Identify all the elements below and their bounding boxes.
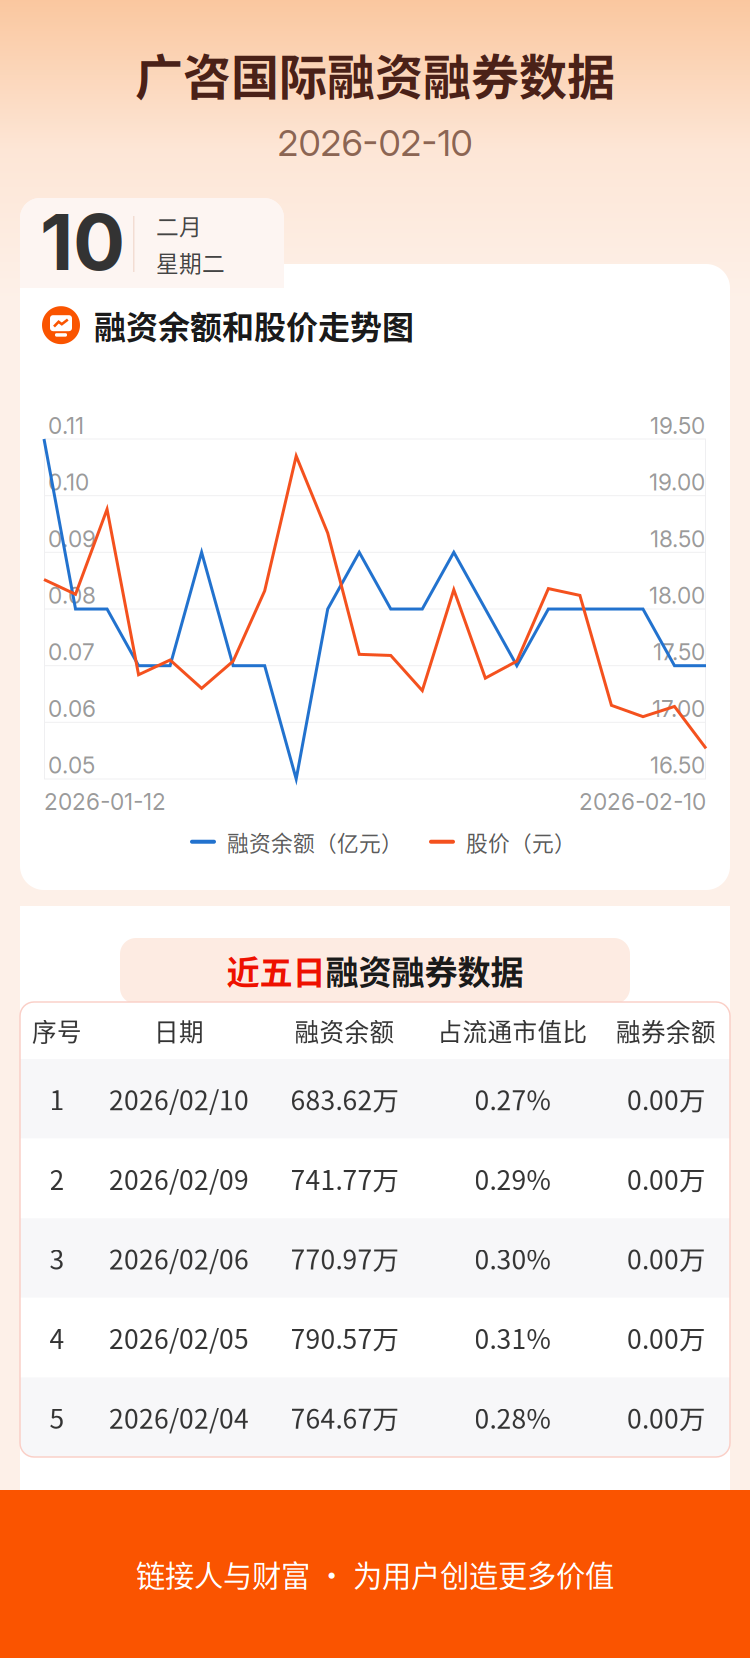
staticText: 占流通市值比: [437, 1013, 587, 1048]
staticText: 融资余额: [294, 1013, 394, 1048]
staticText: 0.00万: [627, 1159, 705, 1197]
staticText: 融资余额和股价走势图: [94, 302, 414, 348]
staticText: 2026-02-10: [277, 121, 472, 165]
staticText: 0.00万: [627, 1080, 705, 1118]
staticText: 近五日: [226, 946, 325, 994]
staticText: 融资余额（亿元）: [227, 826, 403, 857]
staticText: 18.00: [649, 582, 705, 609]
staticText: 0.00万: [627, 1239, 705, 1277]
staticText: 790.57万: [290, 1318, 398, 1357]
staticText: 0.29%: [474, 1159, 550, 1197]
staticText: 2026/02/05: [109, 1318, 249, 1357]
staticText: 770.97万: [290, 1239, 398, 1277]
staticText: 0.31%: [474, 1318, 550, 1357]
staticText: 18.50: [650, 525, 705, 553]
staticText: 19.00: [649, 469, 705, 496]
staticText: 0.28%: [474, 1398, 550, 1436]
staticText: 融券余额: [616, 1013, 716, 1048]
staticText: 3: [49, 1239, 64, 1277]
staticText: 4: [49, 1318, 64, 1357]
staticText: 序号: [32, 1013, 82, 1048]
staticText: 2: [49, 1159, 64, 1197]
staticText: 741.77万: [290, 1159, 398, 1197]
staticText: 2026-02-10: [579, 788, 706, 815]
staticText: 2026-01-12: [44, 788, 166, 815]
staticText: 17.50: [653, 638, 705, 666]
staticText: 683.62万: [290, 1080, 398, 1118]
staticText: 0.11: [48, 412, 84, 439]
staticText: 0.00万: [627, 1318, 705, 1357]
staticText: 0.09: [48, 525, 96, 553]
staticText: 0.06: [48, 695, 96, 722]
staticText: 星期二: [156, 246, 225, 279]
staticText: 2026/02/04: [109, 1398, 249, 1436]
staticText: 0.00万: [627, 1398, 705, 1436]
staticText: 2026/02/09: [109, 1159, 249, 1197]
staticText: 0.30%: [474, 1239, 550, 1277]
staticText: 融资融券数据: [325, 946, 523, 994]
staticText: 10: [40, 195, 125, 289]
staticText: 5: [49, 1398, 64, 1436]
staticText: 17.00: [652, 695, 705, 722]
staticText: 0.07: [48, 638, 95, 666]
staticText: 股价（元）: [466, 826, 576, 857]
staticText: 16.50: [650, 752, 705, 779]
staticText: 链接人与财富 · 为用户创造更多价值: [136, 1553, 614, 1595]
staticText: 2026/02/06: [109, 1239, 249, 1277]
staticText: 广咨国际融资融券数据: [135, 39, 615, 108]
staticText: 0.10: [48, 469, 89, 496]
staticText: 二月: [156, 209, 202, 242]
staticText: 764.67万: [290, 1398, 398, 1436]
staticText: 19.50: [650, 412, 705, 439]
staticText: 0.08: [48, 582, 96, 609]
staticText: 0.27%: [474, 1080, 550, 1118]
staticText: 1: [49, 1080, 64, 1118]
staticText: 日期: [154, 1013, 204, 1048]
staticText: 0.05: [48, 752, 95, 779]
staticText: 2026/02/10: [109, 1080, 249, 1118]
